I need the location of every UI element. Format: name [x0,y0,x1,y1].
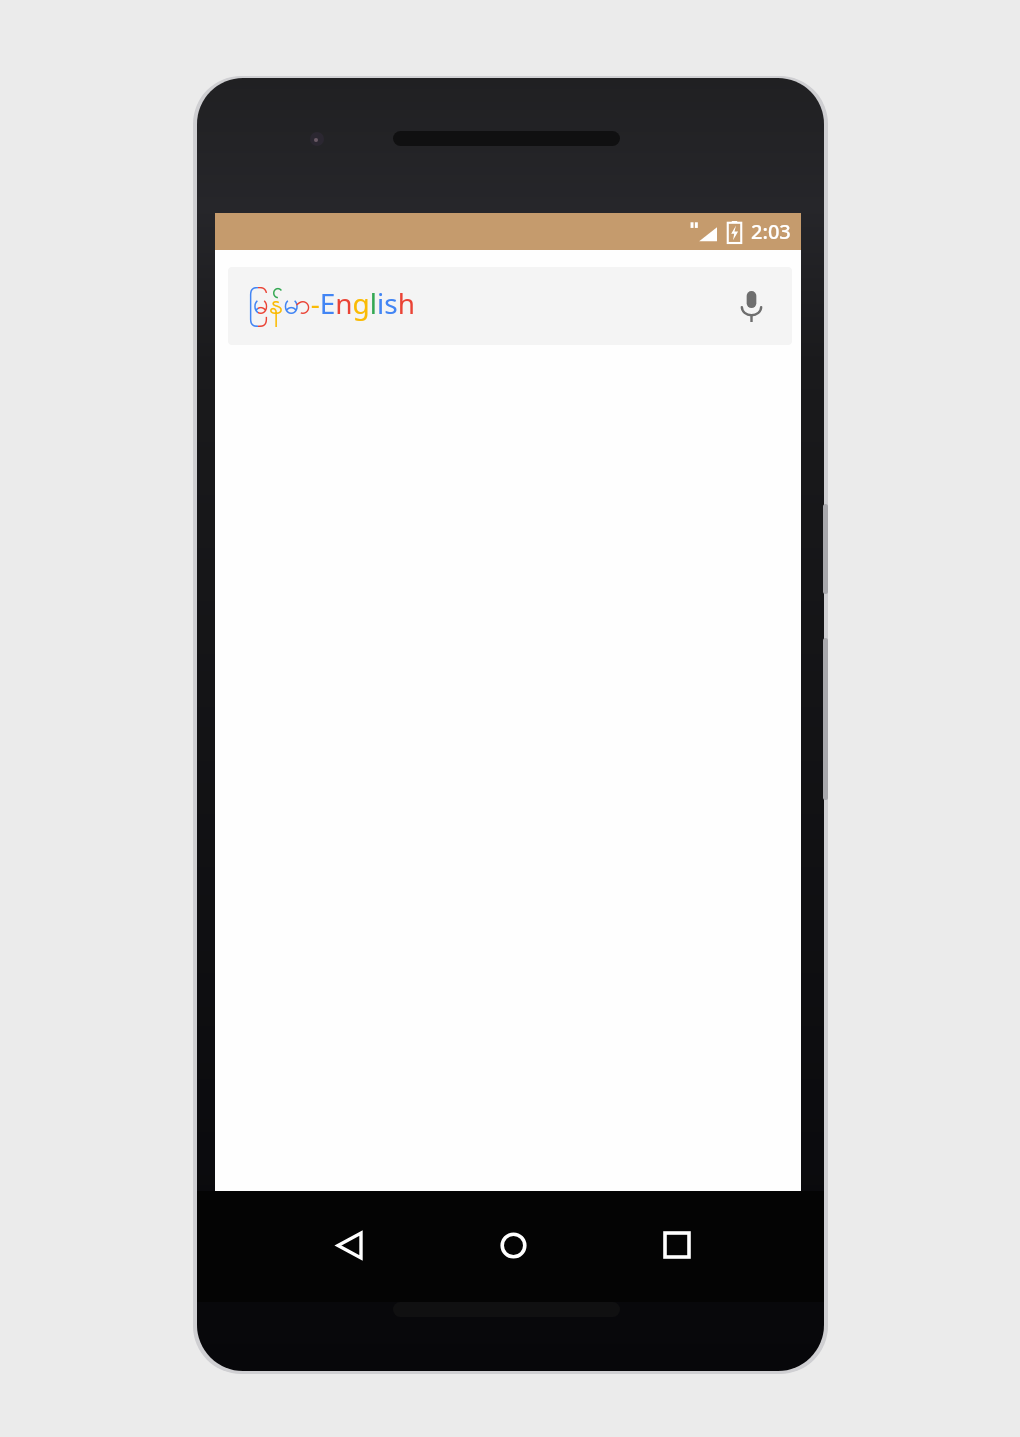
button[interactable]: Voice search [724,279,778,333]
staticText: မြန်မာ-English [248,284,415,328]
button[interactable]: Back [325,1221,373,1269]
button[interactable]: မြန်မာ-English [228,267,792,345]
staticText: 2:03 [751,218,791,245]
button[interactable]: Recent apps [653,1221,701,1269]
button[interactable]: Home [489,1221,537,1269]
